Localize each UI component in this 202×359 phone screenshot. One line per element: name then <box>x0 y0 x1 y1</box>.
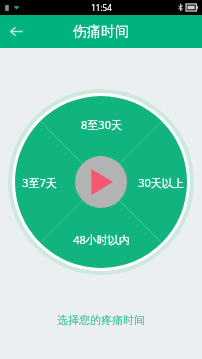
button[interactable]: Back <box>0 15 33 48</box>
staticText: 选择您的疼痛时间 <box>57 313 145 327</box>
staticText: 伤痛时间 <box>73 23 129 41</box>
button[interactable]: Play <box>75 156 127 208</box>
button[interactable]: 8至30天 <box>81 117 122 132</box>
button[interactable]: 48小时以内 <box>73 232 130 247</box>
button[interactable]: 3至7天 <box>22 175 57 190</box>
staticText: 11:54 <box>91 2 112 13</box>
button[interactable]: 30天以上 <box>138 175 184 190</box>
